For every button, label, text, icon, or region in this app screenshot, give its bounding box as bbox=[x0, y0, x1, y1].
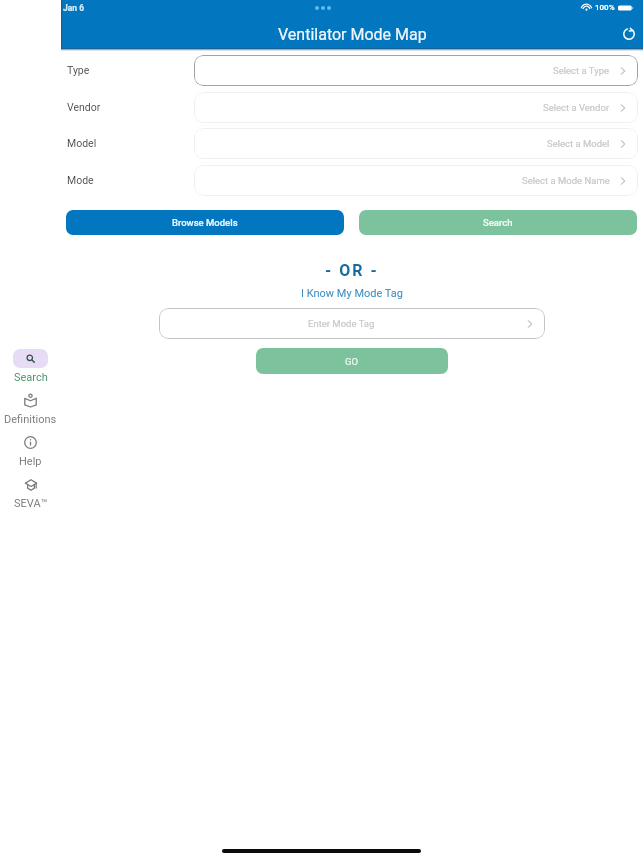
staticText: Vendor bbox=[67, 101, 101, 113]
button[interactable]: Model bbox=[67, 137, 97, 149]
button[interactable]: Enter Mode Tag bbox=[159, 308, 545, 339]
staticText: Select a Type bbox=[553, 65, 610, 76]
button[interactable]: Refresh bbox=[619, 24, 639, 44]
staticText: SEVA™ bbox=[14, 497, 48, 510]
staticText: Definitions bbox=[4, 413, 57, 426]
staticText: Browse Models bbox=[172, 217, 238, 228]
staticText: - OR - bbox=[325, 261, 379, 280]
staticText: Type bbox=[67, 64, 90, 76]
staticText: Enter Mode Tag bbox=[308, 318, 375, 329]
button[interactable]: Browse Models bbox=[66, 210, 344, 235]
staticText: Select a Model bbox=[547, 138, 610, 149]
staticText: Model bbox=[67, 137, 97, 149]
button[interactable]: Select a Mode Name bbox=[194, 165, 638, 196]
staticText: Select a Mode Name bbox=[522, 175, 610, 186]
button[interactable]: Help bbox=[0, 433, 61, 475]
staticText: Mode bbox=[67, 174, 94, 186]
button[interactable]: I Know My Mode Tag bbox=[252, 287, 452, 300]
staticText: 100% bbox=[595, 3, 615, 12]
button[interactable]: Mode bbox=[67, 174, 94, 186]
button[interactable]: Search bbox=[0, 349, 61, 391]
button[interactable]: Type bbox=[67, 64, 90, 76]
button[interactable]: Search bbox=[359, 210, 637, 235]
button[interactable]: Vendor bbox=[67, 101, 101, 113]
button[interactable]: Definitions bbox=[0, 391, 61, 433]
staticText: Help bbox=[19, 455, 42, 468]
button[interactable]: Select a Vendor bbox=[194, 92, 638, 123]
staticText: Ventilator Mode Map bbox=[278, 25, 427, 44]
staticText: I Know My Mode Tag bbox=[301, 287, 403, 300]
staticText: GO bbox=[345, 356, 359, 367]
button[interactable]: SEVA™ bbox=[0, 475, 61, 517]
button[interactable]: Select a Type bbox=[194, 55, 638, 86]
staticText: Search bbox=[14, 371, 48, 384]
staticText: Select a Vendor bbox=[543, 102, 610, 113]
staticText: Search bbox=[483, 217, 513, 228]
button[interactable]: GO bbox=[256, 348, 448, 374]
staticText: Jan 6 bbox=[63, 3, 85, 13]
button[interactable]: Select a Model bbox=[194, 128, 638, 159]
